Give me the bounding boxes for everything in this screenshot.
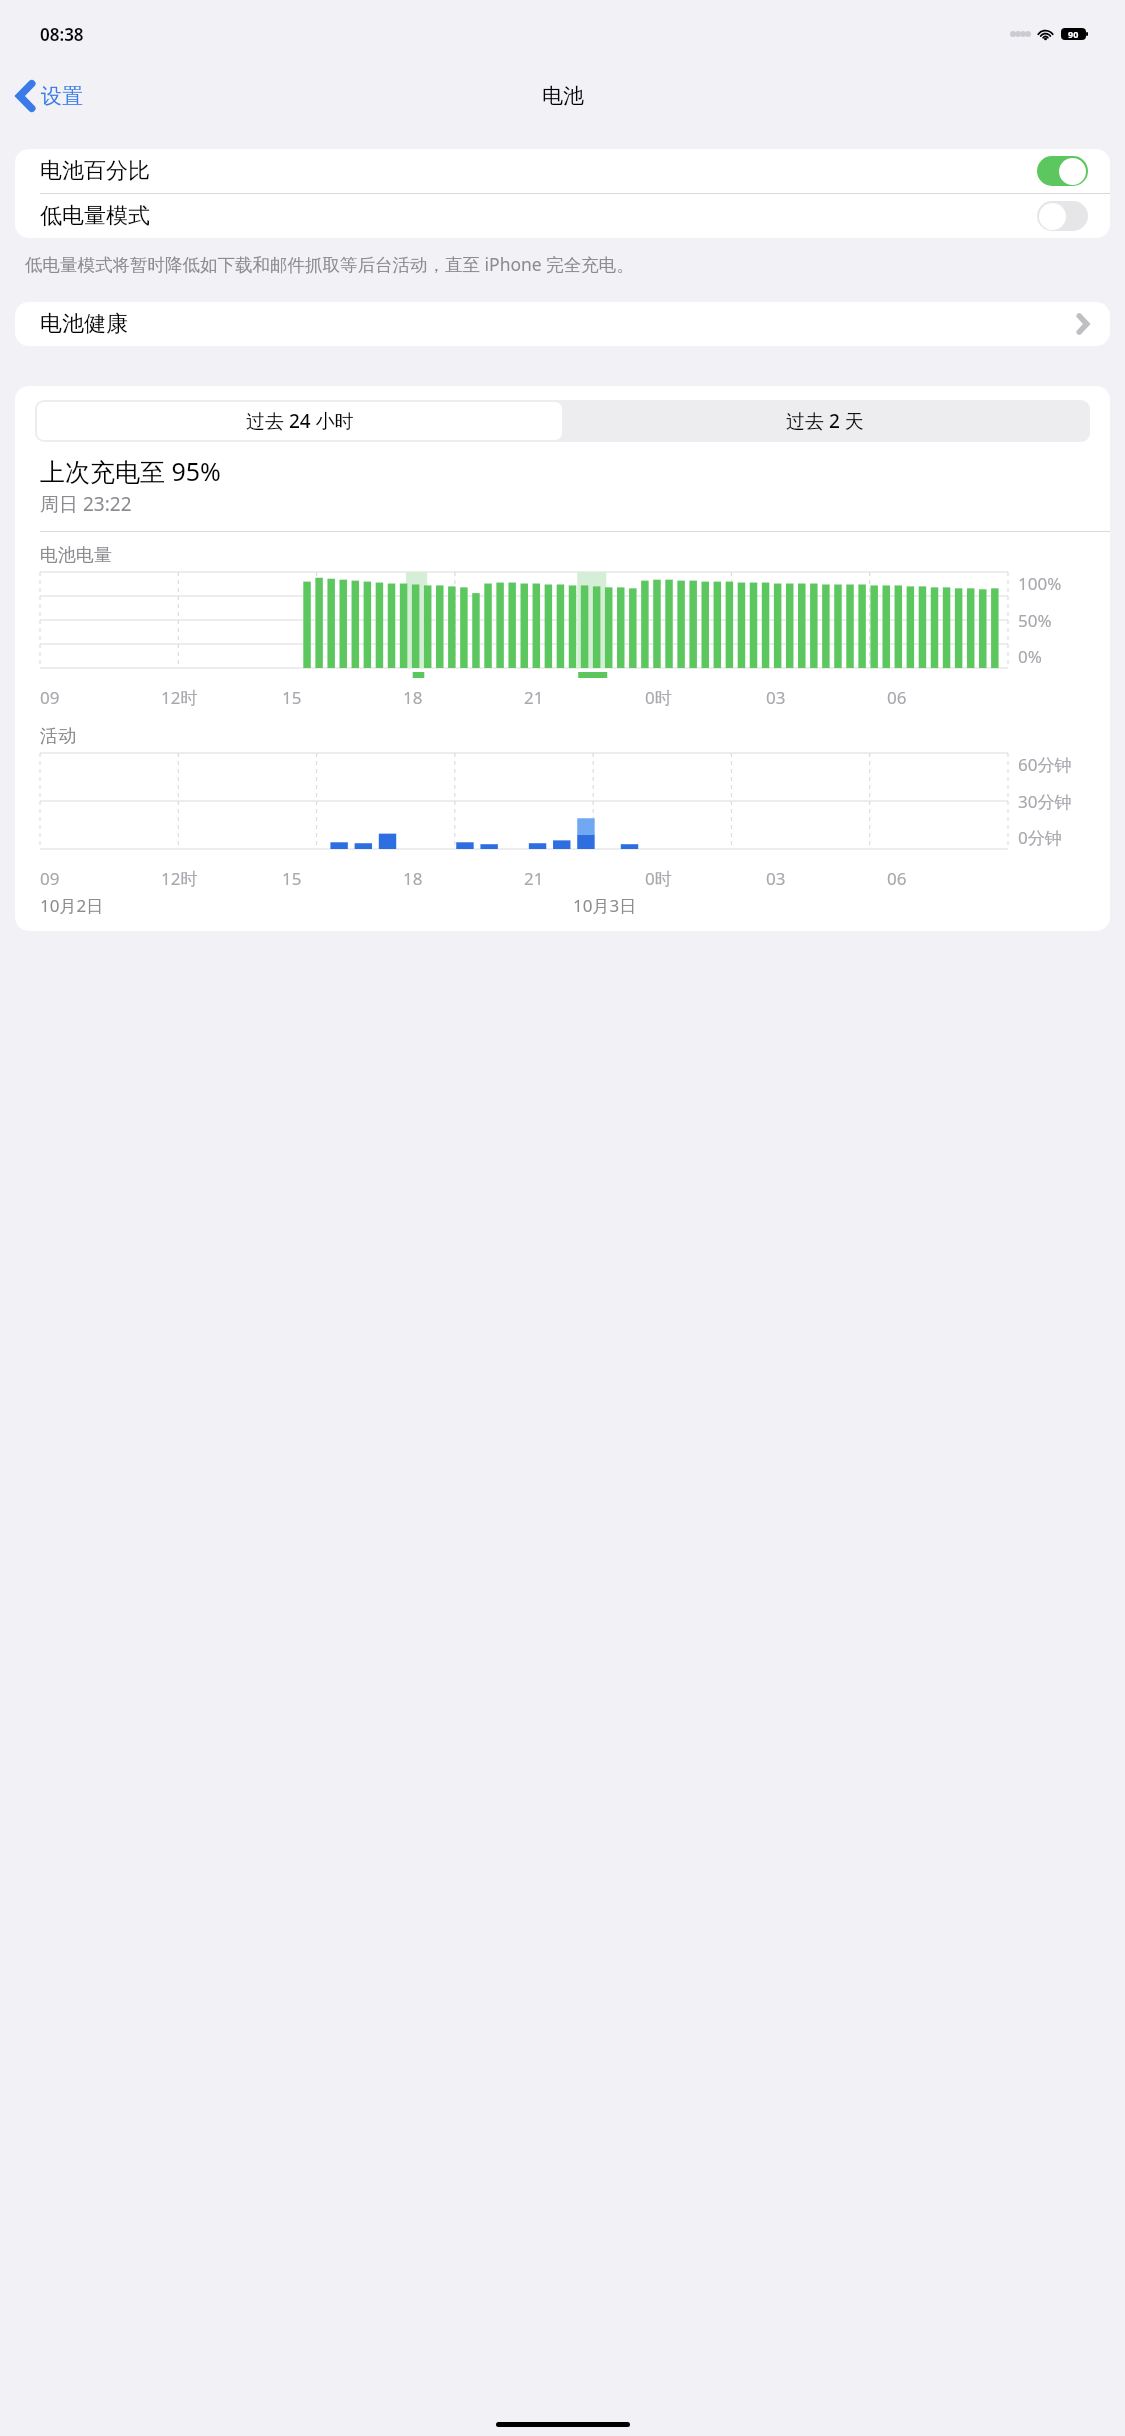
staticText: 0时 <box>645 686 672 709</box>
staticText: 18 <box>403 867 423 890</box>
staticText: 电池电量 <box>40 544 112 567</box>
staticText: 06 <box>887 867 907 890</box>
staticText: 03 <box>766 686 786 709</box>
staticText: 15 <box>282 867 302 890</box>
staticText: 电池 <box>542 83 584 109</box>
staticText: 电池健康 <box>40 310 128 338</box>
button[interactable]: 电池健康 <box>15 302 1110 346</box>
staticText: 100% <box>1018 572 1062 595</box>
staticText: 50% <box>1018 609 1052 632</box>
button[interactable]: Toggle on <box>1037 156 1088 186</box>
staticText: 09 <box>40 867 60 890</box>
staticText: 周日 23:22 <box>40 491 132 517</box>
staticText: 12时 <box>161 686 198 709</box>
staticText: 低电量模式将暂时降低如下载和邮件抓取等后台活动，直至 iPhone 完全充电。 <box>25 252 1100 276</box>
staticText: 30分钟 <box>1018 790 1072 813</box>
staticText: 21 <box>524 686 544 709</box>
staticText: 0分钟 <box>1018 826 1062 849</box>
staticText: 09 <box>40 686 60 709</box>
staticText: 低电量模式 <box>40 202 150 230</box>
staticText: 08:38 <box>40 23 84 46</box>
staticText: 0时 <box>645 867 672 890</box>
staticText: 过去 24 小时 <box>246 408 354 434</box>
staticText: 活动 <box>40 725 76 748</box>
staticText: 过去 2 天 <box>786 408 864 434</box>
button[interactable]: 电池百分比 <box>15 149 1110 193</box>
button[interactable]: 低电量模式 <box>15 194 1110 238</box>
staticText: 设置 <box>41 83 83 109</box>
staticText: 上次充电至 95% <box>40 454 221 488</box>
staticText: 电池百分比 <box>40 157 150 185</box>
staticText: 10月2日 <box>40 894 104 917</box>
staticText: 18 <box>403 686 423 709</box>
staticText: 03 <box>766 867 786 890</box>
staticText: 12时 <box>161 867 198 890</box>
staticText: 06 <box>887 686 907 709</box>
staticText: 60分钟 <box>1018 753 1072 776</box>
staticText: 0% <box>1018 645 1042 668</box>
button[interactable]: 设置 <box>0 76 95 116</box>
staticText: 10月3日 <box>573 894 637 917</box>
staticText: 21 <box>524 867 544 890</box>
button[interactable]: 过去 2 天 <box>562 402 1088 440</box>
staticText: 15 <box>282 686 302 709</box>
button[interactable]: Toggle off <box>1037 201 1088 231</box>
staticText: 90 <box>1068 28 1079 40</box>
button[interactable]: 过去 24 小时 <box>37 402 562 440</box>
